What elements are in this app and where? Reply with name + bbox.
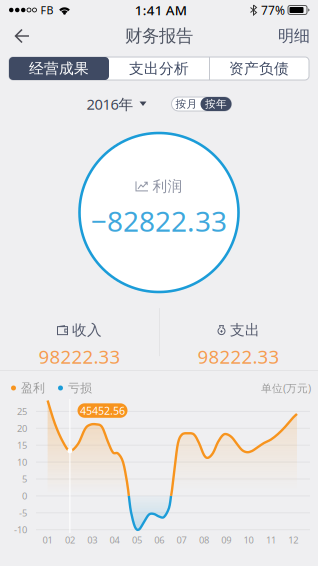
staticText: 10 <box>244 534 254 546</box>
staticText: 45452.56 <box>80 403 125 418</box>
staticText: 10 <box>17 456 27 468</box>
staticText: 98222.33 <box>38 344 120 369</box>
staticText: 5 <box>22 473 27 485</box>
staticText: 0 <box>22 490 27 502</box>
staticText: 07 <box>177 534 187 546</box>
button[interactable]: 明细 <box>278 18 318 54</box>
button[interactable]: 2016年 <box>86 94 146 114</box>
staticText: 明细 <box>278 26 310 46</box>
staticText: 12 <box>288 534 298 546</box>
staticText: 财务报告 <box>125 25 193 47</box>
staticText: 单位(万元) <box>261 381 311 395</box>
button[interactable]: 经营成果 <box>9 57 109 80</box>
staticText: 09 <box>221 534 231 546</box>
staticText: 亏损 <box>68 381 92 395</box>
staticText: 支出 <box>230 321 260 339</box>
staticText: 按年 <box>205 97 227 110</box>
staticText: 08 <box>199 534 209 546</box>
staticText: 资产负债 <box>229 59 289 77</box>
button[interactable]: 按月 <box>171 97 231 111</box>
staticText: 20 <box>17 422 27 434</box>
button[interactable]: Back <box>0 20 30 52</box>
staticText: 经营成果 <box>29 59 89 77</box>
staticText: 01 <box>43 534 53 546</box>
staticText: 15 <box>17 439 27 451</box>
staticText: 利润 <box>152 177 182 195</box>
staticText: −82822.33 <box>91 202 227 240</box>
staticText: 98222.33 <box>197 344 279 369</box>
staticText: 03 <box>87 534 97 546</box>
staticText: 04 <box>110 534 120 546</box>
staticText: 25 <box>17 405 27 418</box>
staticText: FB <box>40 3 53 17</box>
staticText: 按月 <box>175 97 197 110</box>
staticText: 77% <box>261 2 285 18</box>
staticText: -5 <box>19 507 27 519</box>
staticText: -10 <box>14 523 27 536</box>
button[interactable]: 资产负债 <box>209 57 309 80</box>
staticText: 支出分析 <box>129 59 189 77</box>
staticText: 盈利 <box>21 381 45 395</box>
staticText: 05 <box>132 534 142 546</box>
staticText: 02 <box>65 534 75 546</box>
staticText: 11 <box>266 534 276 546</box>
staticText: 1:41 AM <box>135 1 187 19</box>
button[interactable]: 支出分析 <box>109 57 209 80</box>
staticText: 收入 <box>72 321 102 339</box>
staticText: 06 <box>154 534 164 546</box>
staticText: 2016年 <box>86 94 133 114</box>
